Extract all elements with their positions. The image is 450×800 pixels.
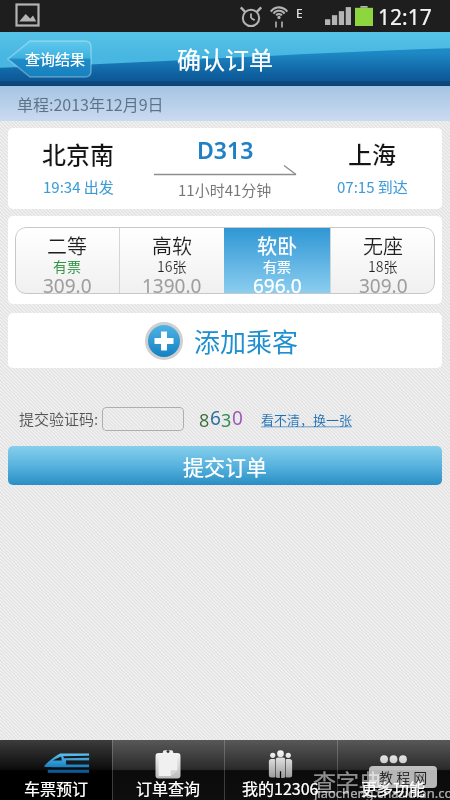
staticText: 3	[221, 408, 232, 433]
staticText: 有票	[263, 256, 291, 276]
staticText: 1390.0	[142, 273, 202, 294]
staticText: jiaocheng.chazidian.com	[314, 784, 450, 800]
staticText: 0	[232, 405, 243, 431]
button[interactable]	[102, 407, 184, 431]
staticText: 696.0	[253, 273, 302, 294]
button[interactable]: 车票预订	[0, 740, 112, 800]
staticText: 18张	[368, 256, 398, 276]
button[interactable]: 我的12306	[224, 740, 337, 800]
staticText: 北京南	[42, 136, 114, 171]
staticText: 我的12306	[242, 776, 319, 799]
staticText: 有票	[53, 256, 81, 276]
staticText: 添加乘客	[194, 322, 299, 360]
staticText: 确认订单	[177, 41, 273, 76]
staticText: 16张	[157, 256, 187, 276]
staticText: 查字典	[313, 764, 382, 797]
staticText: D313	[197, 134, 254, 165]
staticText: 二等	[47, 231, 87, 260]
staticText: 更多功能	[361, 776, 426, 799]
button[interactable]: 看不清，换一张	[261, 410, 353, 429]
staticText: 上海	[348, 136, 396, 171]
staticText: 309.0	[43, 273, 92, 294]
button[interactable]: 无座	[331, 227, 435, 294]
staticText: 教 程 网	[379, 767, 428, 787]
staticText: 07:15 到达	[337, 176, 408, 198]
button[interactable]: 高软	[120, 227, 224, 294]
button[interactable]: 更多功能	[337, 740, 450, 800]
staticText: 提交验证码:	[19, 408, 99, 430]
staticText: 12:17	[378, 3, 432, 32]
staticText: 19:34 出发	[43, 176, 114, 198]
button[interactable]: 软卧	[224, 227, 330, 294]
staticText: 订单查询	[136, 776, 201, 799]
staticText: 6	[210, 405, 221, 431]
staticText: 软卧	[257, 231, 297, 260]
staticText: 提交订单	[183, 451, 267, 481]
staticText: 309.0	[359, 273, 408, 294]
staticText: 无座	[363, 231, 403, 260]
button[interactable]: 查询结果	[8, 41, 91, 77]
button[interactable]: 添加乘客	[8, 313, 442, 368]
button[interactable]: 订单查询	[112, 740, 224, 800]
staticText: 单程:2013年12月9日	[17, 92, 164, 115]
staticText: 高软	[152, 231, 192, 260]
staticText: 看不清，换一张	[261, 410, 353, 429]
staticText: 8	[199, 408, 210, 433]
button[interactable]: 二等	[15, 227, 119, 294]
staticText: E	[296, 5, 303, 21]
staticText: 11小时41分钟	[178, 179, 272, 201]
button[interactable]: 提交订单	[8, 446, 442, 485]
staticText: 车票预订	[24, 776, 89, 799]
staticText: 查询结果	[25, 48, 86, 70]
